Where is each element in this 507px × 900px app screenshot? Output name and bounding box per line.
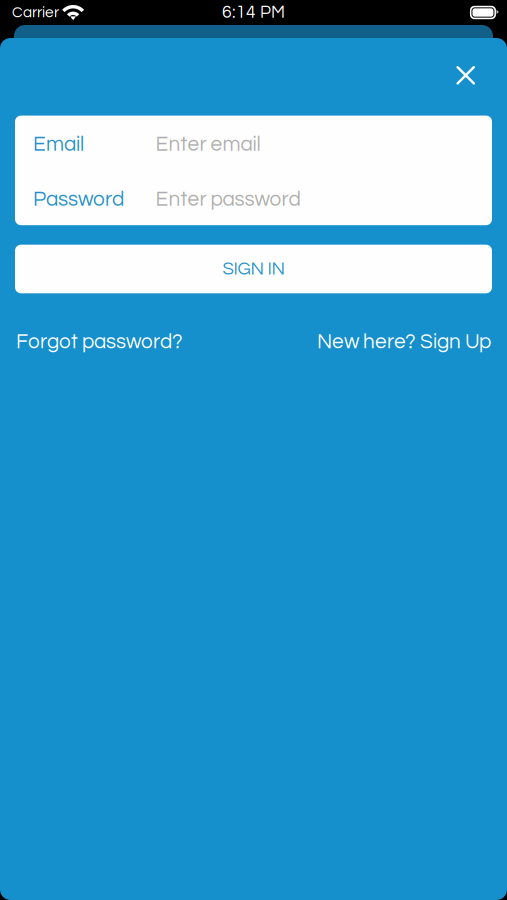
staticText: Enter email (155, 134, 260, 155)
button[interactable]: Close (445, 55, 486, 96)
button[interactable]: Forgot password? (16, 331, 183, 353)
staticText: SIGN IN (222, 259, 284, 278)
button[interactable]: New here? Sign Up (317, 331, 491, 353)
staticText: Email (33, 134, 84, 155)
staticText: Carrier (12, 5, 59, 20)
staticText: New here? Sign Up (317, 331, 491, 353)
staticText: Enter password (155, 189, 300, 210)
staticText: Forgot password? (16, 331, 183, 353)
button[interactable]: SIGN IN (15, 245, 492, 293)
staticText: Password (33, 189, 124, 210)
staticText: 6:14 PM (222, 4, 285, 21)
